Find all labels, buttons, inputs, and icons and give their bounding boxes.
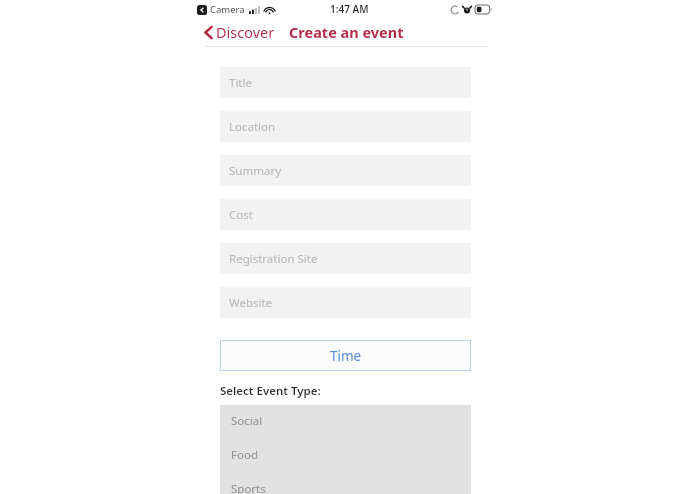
button[interactable]: Food: [220, 447, 471, 462]
staticText: Social: [231, 413, 263, 428]
staticText: Website: [229, 295, 273, 311]
button[interactable]: Summary: [220, 155, 471, 186]
button[interactable]: Social: [220, 413, 471, 428]
button[interactable]: Sports: [220, 481, 471, 494]
button[interactable]: Discover: [204, 22, 275, 42]
button[interactable]: Registration Site: [220, 243, 471, 274]
staticText: Select Event Type:: [220, 383, 321, 399]
staticText: Location: [229, 119, 276, 135]
staticText: Discover: [216, 22, 275, 42]
staticText: 1:47 AM: [330, 2, 369, 16]
staticText: Create an event: [289, 22, 404, 42]
staticText: Summary: [229, 163, 281, 179]
staticText: Registration Site: [229, 251, 318, 267]
staticText: Camera: [210, 3, 245, 16]
staticText: Sports: [231, 481, 266, 494]
button[interactable]: Website: [220, 287, 471, 318]
button[interactable]: Cost: [220, 199, 471, 230]
button[interactable]: Location: [220, 111, 471, 142]
button[interactable]: Title: [220, 67, 471, 98]
staticText: Time: [330, 347, 362, 365]
staticText: Title: [229, 75, 252, 91]
button[interactable]: Time: [220, 340, 471, 371]
staticText: Food: [231, 447, 258, 462]
staticText: Cost: [229, 207, 253, 223]
